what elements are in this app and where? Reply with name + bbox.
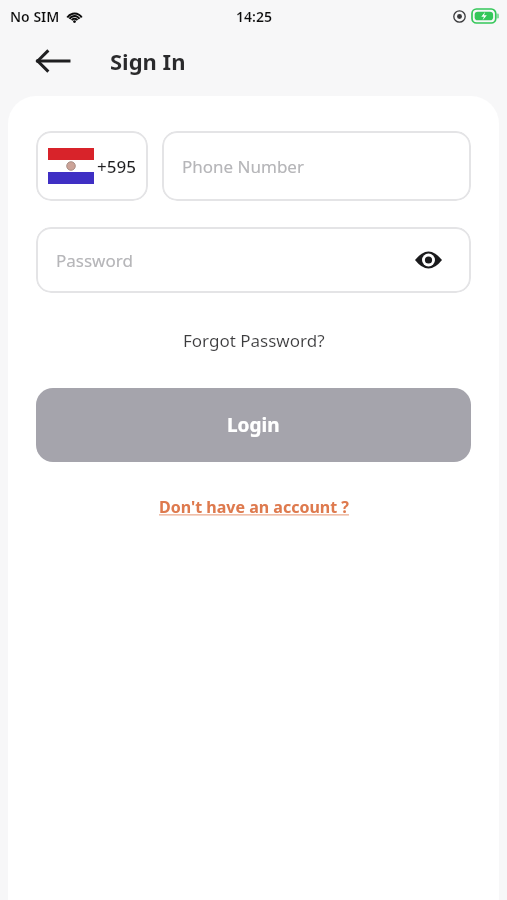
button[interactable]: Forgot Password? bbox=[173, 325, 335, 356]
staticText: +595 bbox=[97, 155, 136, 178]
staticText: No SIM bbox=[10, 7, 60, 26]
button[interactable]: Phone Number bbox=[162, 131, 471, 201]
button[interactable]: Login bbox=[36, 388, 471, 462]
staticText: Phone Number bbox=[182, 155, 304, 178]
staticText: Forgot Password? bbox=[183, 329, 325, 352]
button[interactable]: Back bbox=[26, 34, 80, 88]
button[interactable]: Show password bbox=[411, 243, 445, 277]
staticText: Password bbox=[56, 249, 133, 272]
button[interactable]: Don't have an account ? bbox=[149, 492, 359, 522]
staticText: Don't have an account ? bbox=[159, 496, 349, 518]
staticText: Login bbox=[227, 412, 280, 438]
staticText: 14:25 bbox=[236, 7, 272, 26]
button[interactable]: +595 bbox=[36, 131, 148, 201]
staticText: Sign In bbox=[110, 46, 186, 76]
button[interactable]: Password bbox=[36, 227, 471, 293]
